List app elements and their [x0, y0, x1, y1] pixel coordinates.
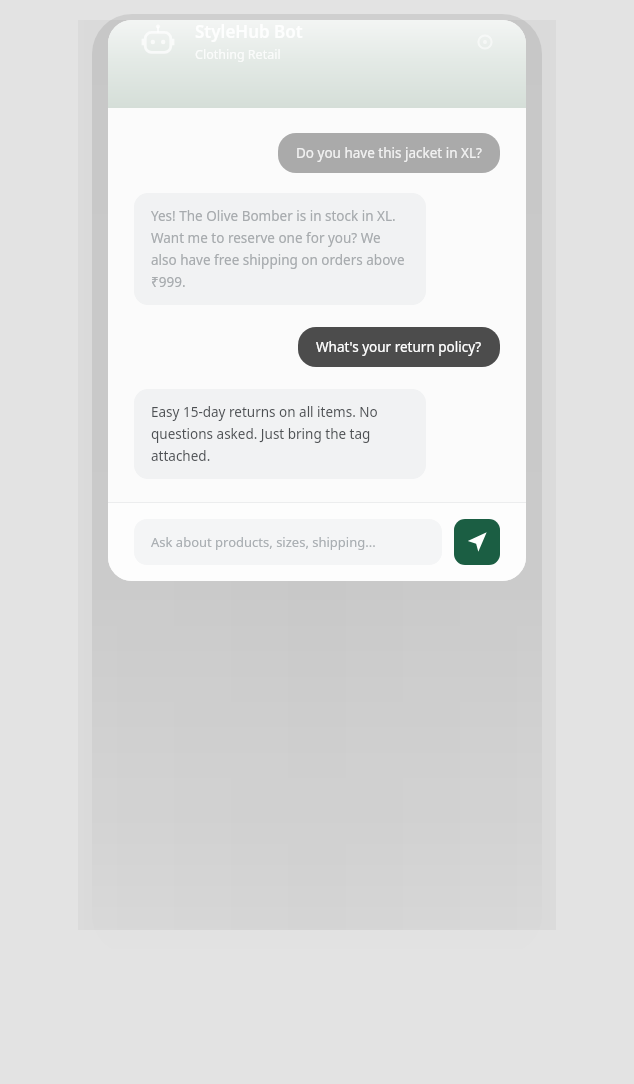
staticText: Ask about products, sizes, shipping... — [151, 533, 376, 551]
staticText: Clothing Retail — [195, 46, 281, 63]
button[interactable]: Easy 15-day returns on all items. No que… — [134, 389, 426, 479]
staticText: Yes! The Olive Bomber is in stock in XL.… — [151, 207, 409, 291]
staticText: What's your return policy? — [316, 338, 482, 356]
button[interactable]: Ask about products, sizes, shipping... — [134, 519, 442, 565]
staticText: StyleHub Bot — [195, 20, 303, 43]
other: Bot avatar — [138, 22, 178, 62]
staticText: Easy 15-day returns on all items. No que… — [151, 403, 409, 465]
button[interactable]: More options — [474, 31, 496, 53]
button[interactable]: Yes! The Olive Bomber is in stock in XL.… — [134, 193, 426, 305]
button[interactable]: Send — [454, 519, 500, 565]
button[interactable]: Do you have this jacket in XL? — [278, 133, 500, 173]
button[interactable]: What's your return policy? — [298, 327, 500, 367]
staticText: Do you have this jacket in XL? — [296, 144, 482, 162]
